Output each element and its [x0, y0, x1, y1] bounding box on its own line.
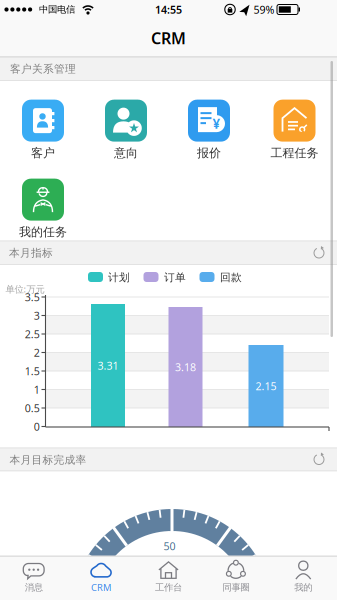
- staticText: 中国电信: [39, 4, 75, 15]
- staticText: 1.5: [25, 364, 40, 378]
- button[interactable]: ¥: [169, 98, 249, 162]
- staticText: ¥: [212, 115, 220, 132]
- staticText: 工程任务: [270, 146, 318, 160]
- staticText: 3: [34, 308, 40, 323]
- staticText: CRM: [91, 581, 111, 594]
- staticText: 订单: [164, 271, 186, 284]
- button[interactable]: 意向: [86, 98, 166, 162]
- staticText: 3.18: [175, 360, 196, 374]
- button[interactable]: 我的任务: [3, 177, 83, 241]
- staticText: 单位:万元: [5, 283, 44, 295]
- staticText: 消息: [25, 582, 43, 593]
- staticText: 50: [163, 539, 175, 553]
- button[interactable]: 刷新: [307, 447, 331, 471]
- button[interactable]: 我的: [270, 556, 337, 600]
- button[interactable]: 工作台: [135, 556, 202, 600]
- staticText: 0: [34, 419, 40, 434]
- staticText: 1: [34, 382, 40, 397]
- staticText: 2.15: [255, 379, 276, 393]
- staticText: 本月指标: [9, 246, 53, 259]
- staticText: 客户关系管理: [10, 62, 76, 75]
- staticText: 工作台: [155, 582, 182, 593]
- staticText: 3.5: [25, 290, 40, 304]
- staticText: 0.5: [25, 401, 40, 415]
- staticText: 我的: [294, 582, 312, 593]
- button[interactable]: 消息: [0, 556, 67, 600]
- staticText: 3.31: [97, 358, 118, 373]
- staticText: CRM: [151, 27, 186, 49]
- button[interactable]: CRM: [67, 556, 135, 600]
- button[interactable]: 同事圈: [202, 556, 270, 600]
- staticText: 本月目标完成率: [9, 453, 86, 466]
- staticText: 计划: [108, 271, 130, 284]
- staticText: 2.5: [25, 327, 40, 341]
- staticText: 同事圈: [222, 582, 249, 593]
- staticText: 59%: [253, 2, 274, 17]
- staticText: 回款: [220, 271, 242, 284]
- staticText: 意向: [114, 146, 138, 160]
- staticText: 2: [34, 345, 40, 360]
- staticText: 我的任务: [19, 225, 67, 239]
- button[interactable]: 刷新: [307, 241, 331, 265]
- button[interactable]: 客户: [3, 98, 83, 162]
- staticText: 报价: [197, 146, 221, 160]
- staticText: 14:55: [155, 2, 182, 17]
- staticText: 客户: [31, 146, 55, 160]
- button[interactable]: 工程任务: [254, 98, 334, 162]
